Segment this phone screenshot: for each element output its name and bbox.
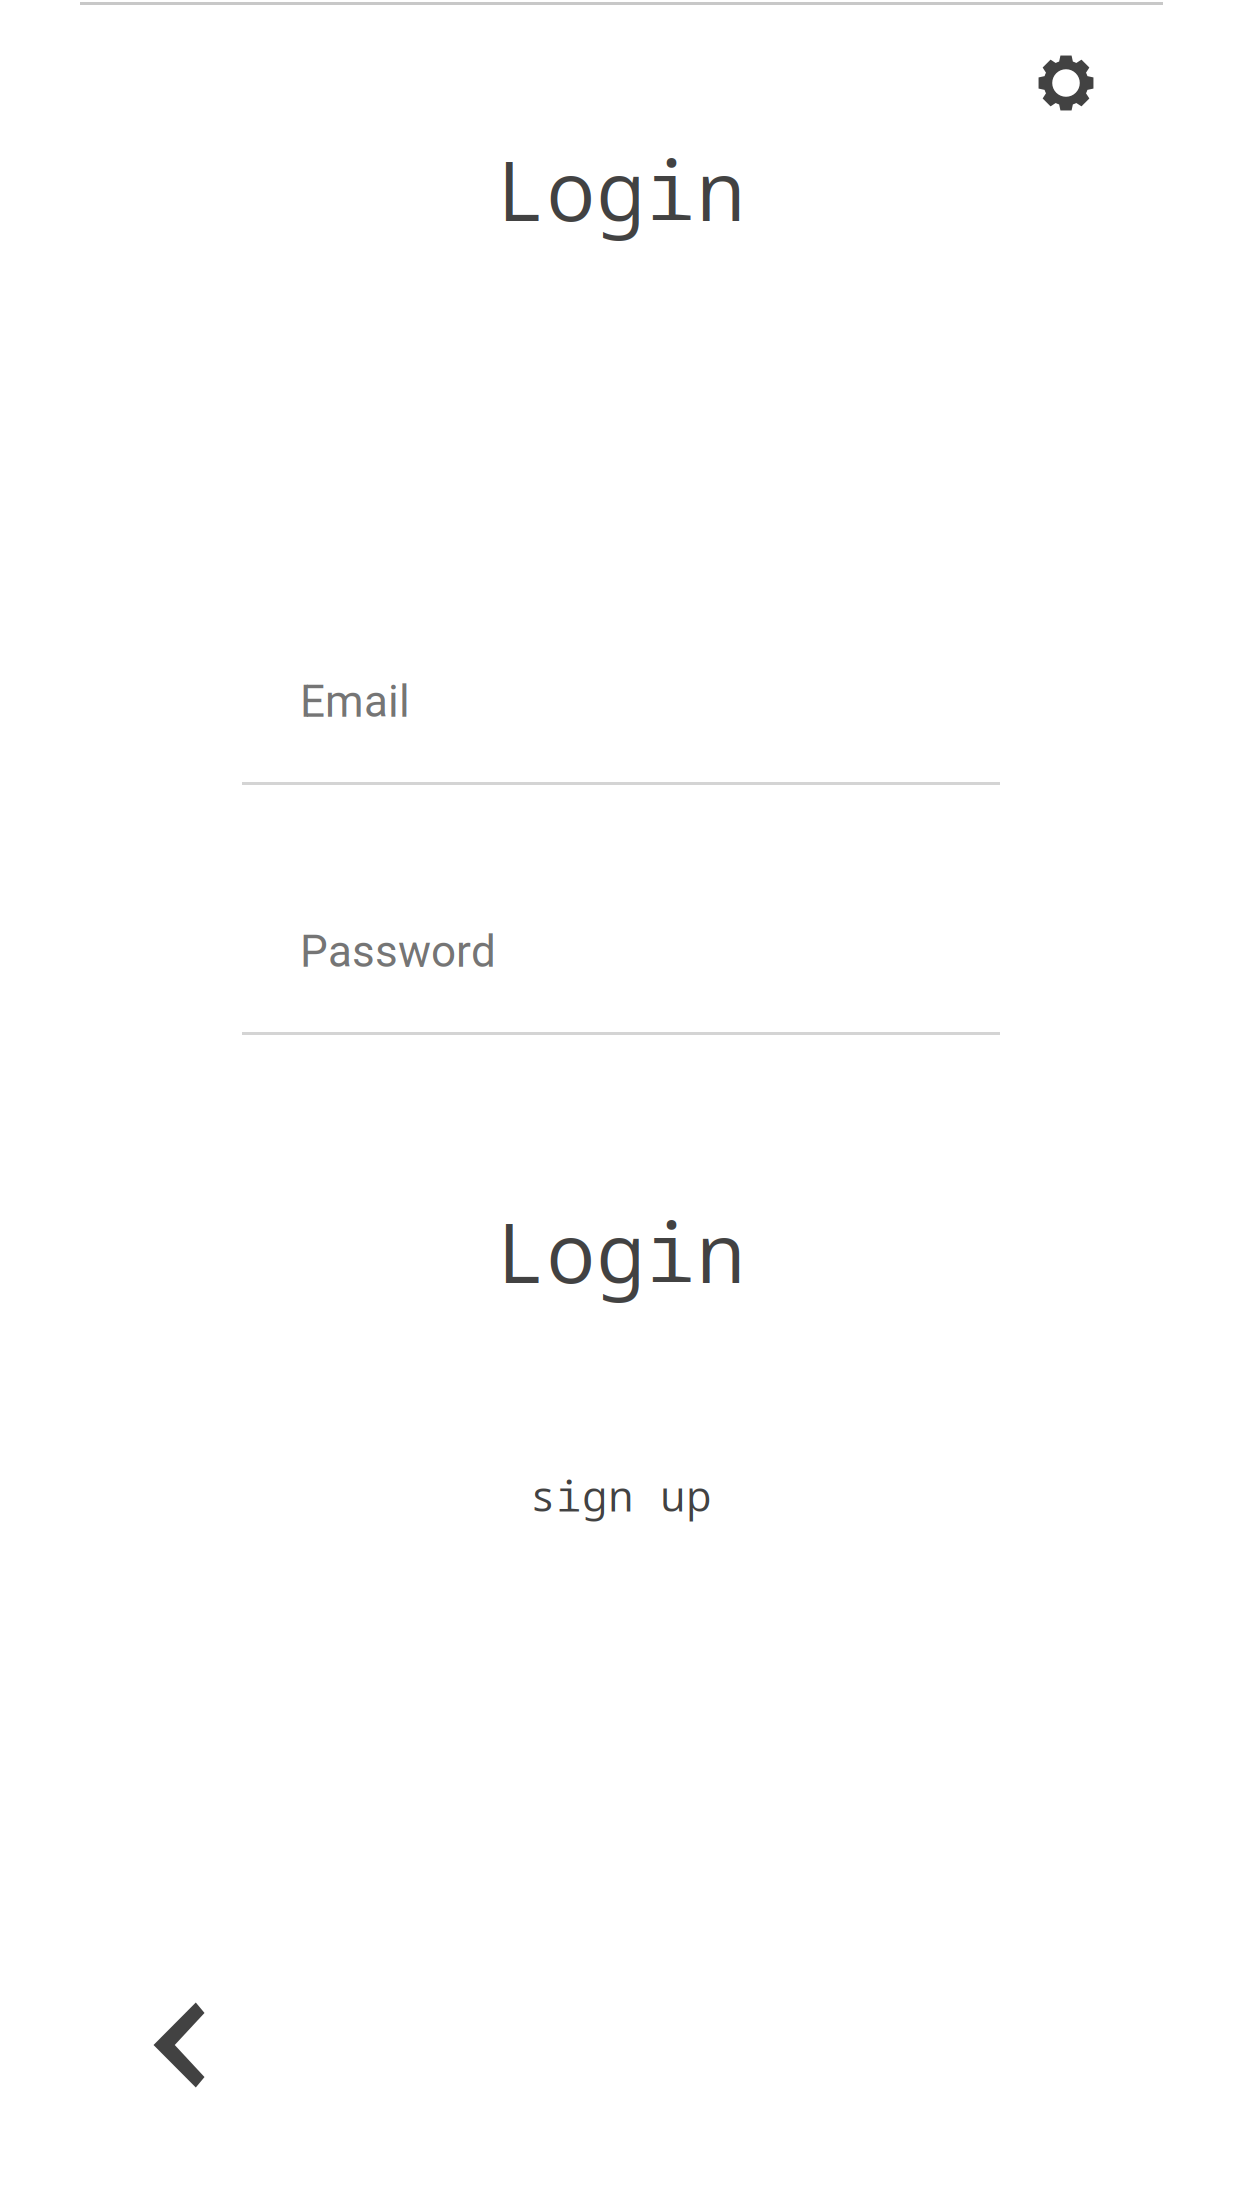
staticText: Login (496, 133, 746, 245)
button[interactable]: Settings (1006, 23, 1126, 143)
staticText: sign up (530, 1466, 712, 1524)
button[interactable]: Email (242, 677, 1000, 789)
staticText: Email (300, 676, 410, 728)
staticText: Password (300, 926, 496, 978)
button[interactable]: Password (242, 927, 1000, 1039)
button[interactable]: sign up (0, 1455, 1242, 1535)
staticText: Login (496, 1195, 746, 1307)
button[interactable]: Back (109, 1975, 249, 2115)
button[interactable]: Login (0, 1191, 1242, 1311)
